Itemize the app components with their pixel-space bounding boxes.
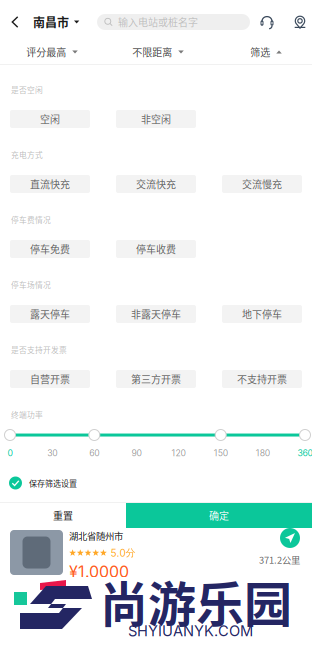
staticText: 150 <box>214 448 228 458</box>
staticText: 5.0分 <box>110 546 135 559</box>
staticText: 停车免费 <box>30 242 70 256</box>
button[interactable]: 评分最高 <box>7 40 97 64</box>
button[interactable]: 自营开票 <box>10 370 90 388</box>
button[interactable]: 不限距离 <box>113 40 203 64</box>
staticText: 充电方式 <box>11 149 43 160</box>
button[interactable]: 重置 <box>0 503 126 528</box>
staticText: 0 <box>7 448 12 458</box>
staticText: 交流快充 <box>136 177 176 191</box>
staticText: 确定 <box>209 508 229 523</box>
button[interactable]: 地下停车 <box>222 305 302 323</box>
button[interactable]: 筛选 <box>221 40 311 64</box>
staticText: 自营开票 <box>30 372 70 386</box>
button[interactable]: 客服 <box>256 11 278 33</box>
staticText: 终端功率 <box>11 409 43 420</box>
button[interactable]: 停车收费 <box>116 240 196 258</box>
staticText: 直流快充 <box>30 177 70 191</box>
staticText: 非空闲 <box>141 112 171 126</box>
button[interactable]: 不支持开票 <box>222 370 302 388</box>
staticText: 地下停车 <box>242 307 282 321</box>
staticText: 360 <box>297 448 312 458</box>
button[interactable]: 南昌市 <box>33 8 79 36</box>
staticText: 输入电站或桩名字 <box>118 15 198 29</box>
staticText: 60 <box>89 448 99 458</box>
button[interactable]: 非露天停车 <box>116 305 196 323</box>
button[interactable]: 保存筛选设置 <box>0 474 312 492</box>
staticText: 非露天停车 <box>131 307 181 321</box>
staticText: 是否空闲 <box>11 84 43 95</box>
staticText: 评分最高 <box>26 45 66 59</box>
staticText: 交流慢充 <box>242 177 282 191</box>
staticText: 重置 <box>53 508 73 523</box>
button[interactable]: 交流快充 <box>116 175 196 193</box>
staticText: 30 <box>47 448 57 458</box>
staticText: 停车费情况 <box>11 214 51 225</box>
button[interactable]: 直流快充 <box>10 175 90 193</box>
button[interactable]: 返回 <box>6 8 24 36</box>
staticText: 是否支持开发票 <box>11 344 67 355</box>
button[interactable]: 交流慢充 <box>222 175 302 193</box>
staticText: 第三方开票 <box>131 372 181 386</box>
staticText: 180 <box>256 448 270 458</box>
staticText: 120 <box>172 448 186 458</box>
staticText: 90 <box>131 448 141 458</box>
staticText: 不限距离 <box>132 45 172 59</box>
staticText: 南昌市 <box>33 13 69 31</box>
staticText: 371.2公里 <box>259 553 300 566</box>
button[interactable]: 停车免费 <box>10 240 90 258</box>
button[interactable]: 露天停车 <box>10 305 90 323</box>
staticText: SHYIUANYK.COM <box>128 622 253 640</box>
button[interactable]: 确定 <box>126 503 312 528</box>
staticText: 停车场情况 <box>11 279 51 290</box>
staticText: 露天停车 <box>30 307 70 321</box>
button[interactable]: 湖北省随州市 <box>0 528 312 598</box>
staticText: 湖北省随州市 <box>69 529 123 542</box>
staticText: 不支持开票 <box>237 372 287 386</box>
button[interactable]: 空闲 <box>10 110 90 128</box>
staticText: 筛选 <box>250 45 270 59</box>
button[interactable]: 第三方开票 <box>116 370 196 388</box>
button[interactable]: 定位 <box>289 11 311 33</box>
staticText: 保存筛选设置 <box>29 477 77 489</box>
staticText: ¥1.0000 <box>69 562 129 581</box>
button[interactable]: 非空闲 <box>116 110 196 128</box>
staticText: 尚游乐园 <box>100 566 292 636</box>
staticText: 停车收费 <box>136 242 176 256</box>
staticText: 空闲 <box>40 112 60 126</box>
